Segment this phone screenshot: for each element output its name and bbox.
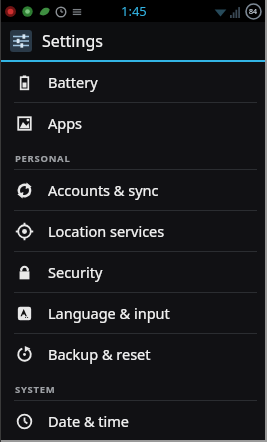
staticText: Location services xyxy=(48,221,165,241)
button[interactable]: Backup & reset xyxy=(0,334,267,374)
staticText: Date & time xyxy=(48,411,129,431)
button[interactable]: Battery xyxy=(0,62,267,102)
button[interactable]: Language & input xyxy=(0,293,267,333)
staticText: Apps xyxy=(48,113,83,133)
staticText: Backup & reset xyxy=(48,344,151,364)
button[interactable]: Date & time xyxy=(0,401,267,441)
button[interactable]: Accounts & sync xyxy=(0,170,267,210)
button[interactable]: Security xyxy=(0,252,267,292)
staticText: Accounts & sync xyxy=(48,180,159,200)
button[interactable]: Location services xyxy=(0,211,267,251)
staticText: Language & input xyxy=(48,303,170,323)
staticText: SYSTEM xyxy=(15,383,56,396)
button[interactable]: Apps xyxy=(0,103,267,143)
staticText: Battery xyxy=(48,72,98,92)
staticText: 84 xyxy=(249,7,258,17)
staticText: Security xyxy=(48,262,103,282)
staticText: 1:45 xyxy=(121,2,147,20)
staticText: PERSONAL xyxy=(15,152,71,165)
button[interactable]: Settings xyxy=(0,22,267,60)
staticText: Settings xyxy=(42,30,103,52)
